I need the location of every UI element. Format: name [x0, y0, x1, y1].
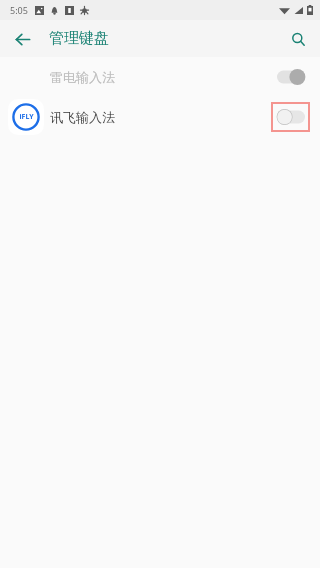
button[interactable]: Toggle 讯飞输入法 — [271, 102, 310, 132]
staticText: 雷电输入法 — [50, 69, 115, 85]
button[interactable]: 雷电输入法 — [0, 59, 320, 95]
button[interactable]: iFLY — [0, 95, 320, 139]
staticText: 讯飞输入法 — [50, 109, 115, 125]
button[interactable]: Search — [282, 23, 314, 55]
staticText: 管理键盘 — [49, 29, 109, 48]
staticText: iFLY — [19, 112, 34, 122]
staticText: 5:05 — [10, 4, 28, 16]
button[interactable]: Back — [6, 23, 38, 55]
button[interactable]: Toggle 雷电输入法 — [271, 62, 310, 92]
